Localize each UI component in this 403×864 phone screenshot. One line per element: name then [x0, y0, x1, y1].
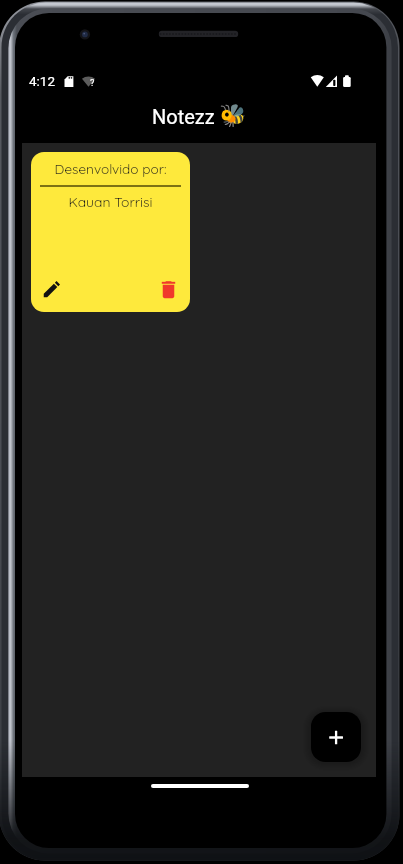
staticText: Desenvolvido por:	[31, 160, 190, 180]
button[interactable]: Desenvolvido por:	[31, 152, 190, 312]
staticText: 🐝	[219, 103, 247, 129]
button[interactable]: Delete note	[157, 278, 180, 301]
button[interactable]: Edit note	[41, 278, 63, 300]
staticText: Notezz	[152, 105, 215, 128]
button[interactable]: Add note	[311, 712, 361, 762]
staticText: Kauan Torrisi	[31, 193, 190, 213]
staticText: 4:12	[29, 73, 56, 89]
staticText: ?	[90, 77, 95, 88]
